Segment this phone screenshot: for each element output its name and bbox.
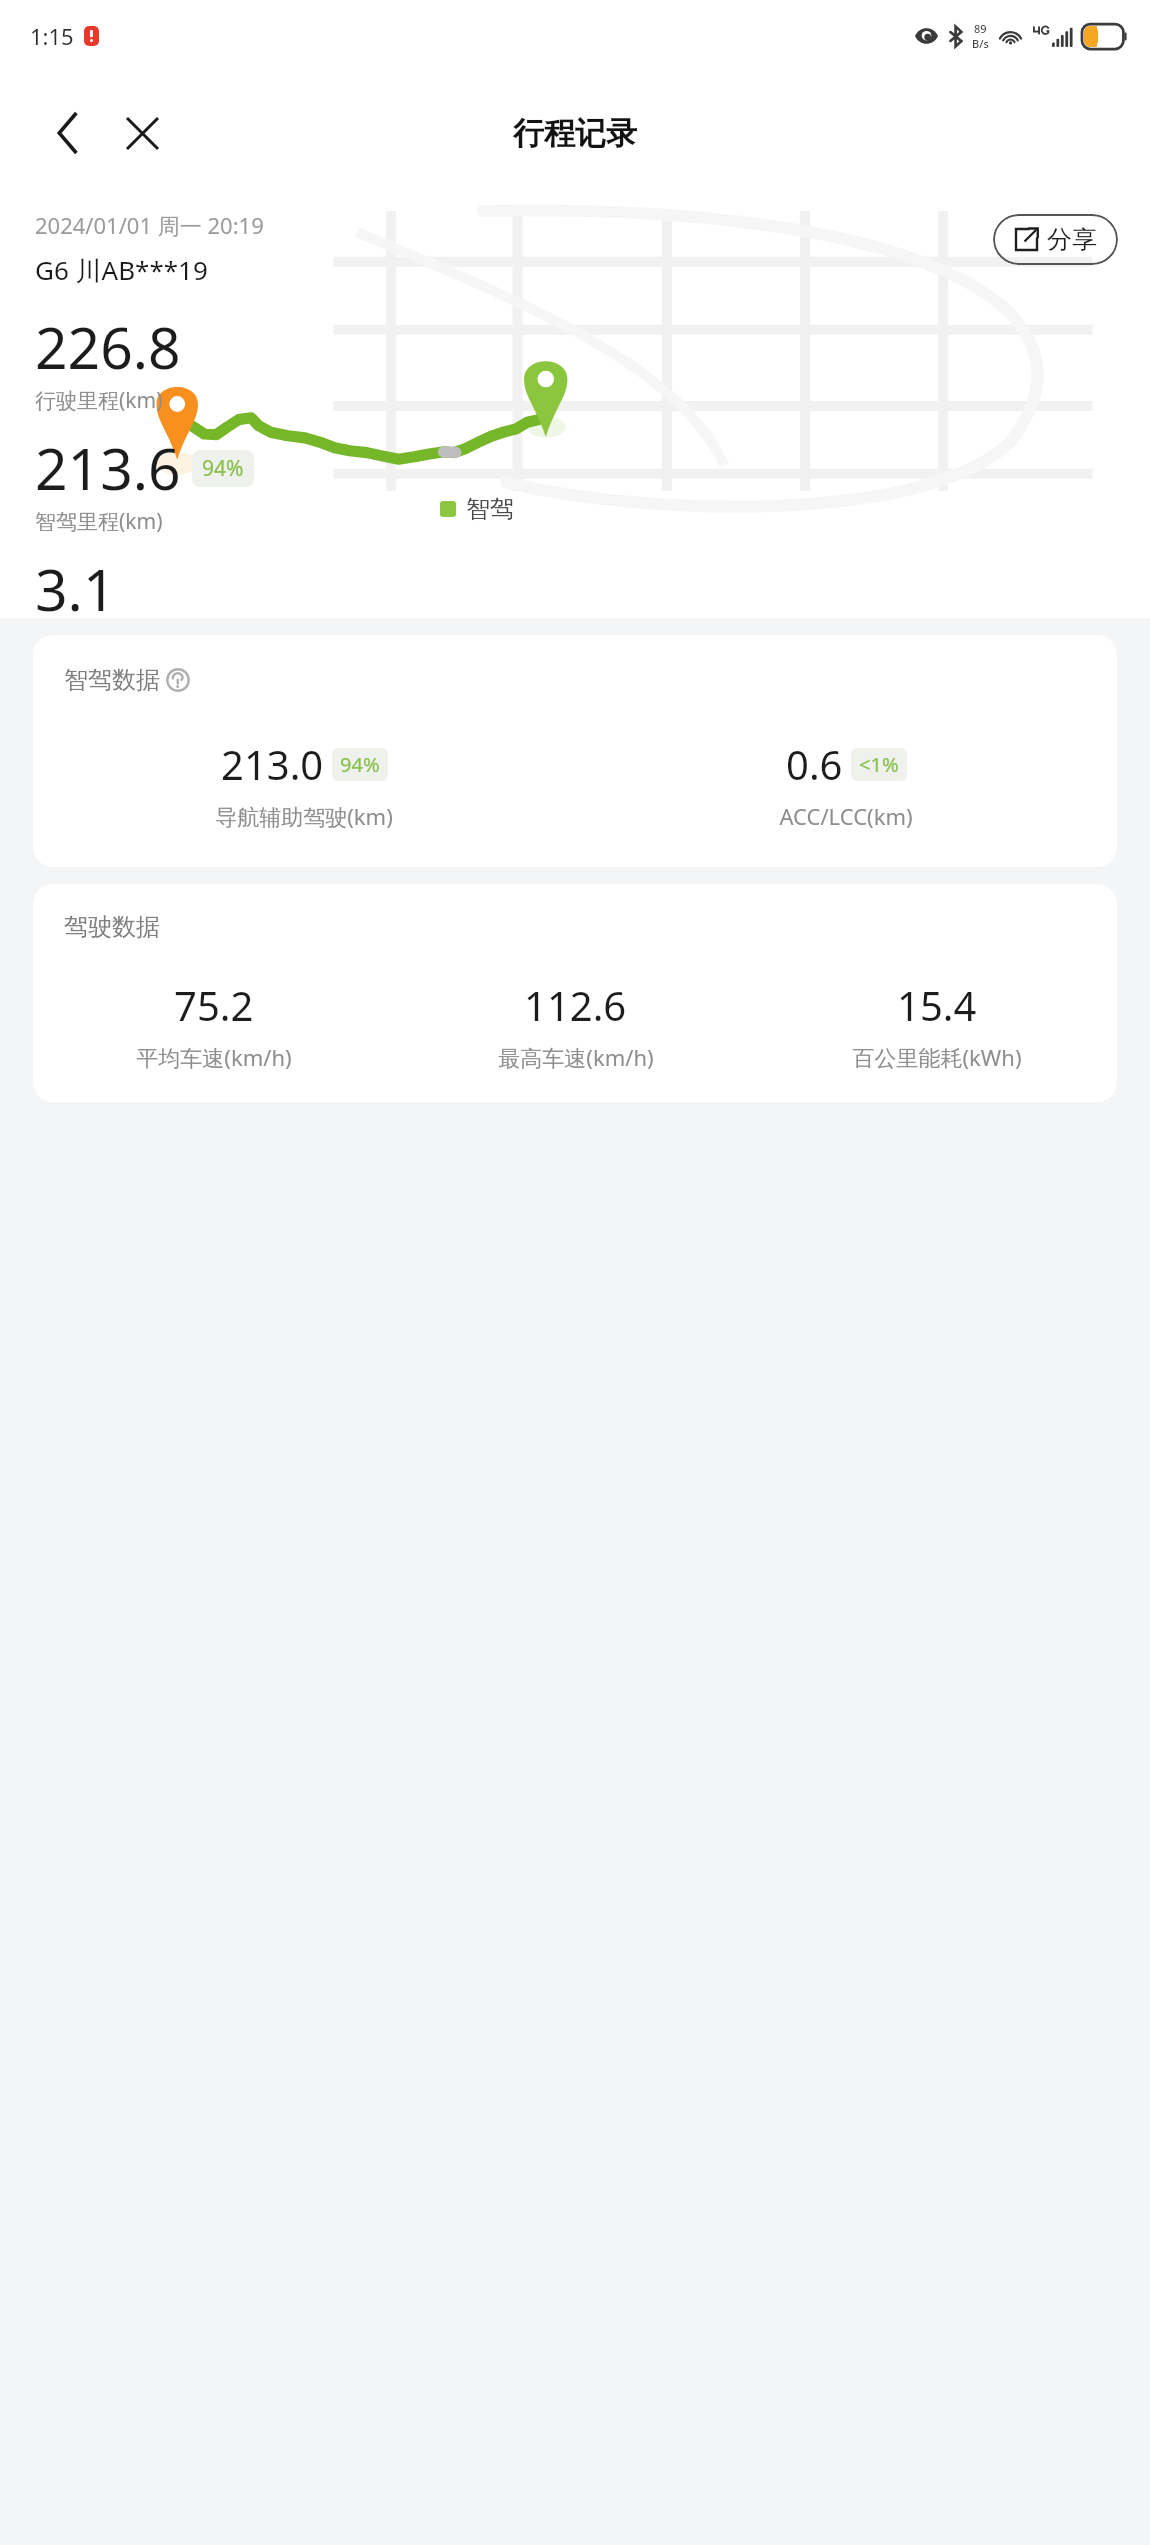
staticText: B/s — [972, 36, 989, 51]
staticText: 智驾数据 — [64, 665, 160, 695]
staticText: ACC/LCC(km) — [779, 801, 913, 831]
staticText: 94% — [340, 751, 380, 778]
staticText: 百公里能耗(kWh) — [852, 1042, 1022, 1072]
staticText: <1% — [859, 751, 899, 778]
staticText: 112.6 — [524, 978, 627, 1032]
button[interactable]: 分享 — [993, 214, 1118, 265]
button[interactable]: Close — [112, 103, 172, 163]
staticText: 0.6 — [786, 737, 843, 791]
staticText: 2024/01/01 周一 20:19 — [35, 210, 264, 240]
button[interactable]: 驾驶数据 — [33, 884, 1117, 1102]
staticText: 94% — [202, 454, 244, 483]
staticText: 89 — [974, 21, 987, 36]
staticText: 智驾 — [466, 494, 514, 524]
staticText: 驾驶数据 — [64, 912, 160, 942]
staticText: 最高车速(km/h) — [498, 1042, 654, 1072]
staticText: 15.4 — [897, 978, 977, 1032]
staticText: 226.8 — [35, 308, 181, 386]
staticText: 分享 — [1047, 224, 1097, 255]
button[interactable]: Back — [38, 103, 98, 163]
staticText: G6 川AB***19 — [35, 252, 208, 288]
staticText: 213.6 — [35, 429, 181, 507]
staticText: 213.0 — [221, 737, 324, 791]
staticText: 行程记录 — [513, 114, 637, 153]
staticText: 75.2 — [174, 978, 254, 1032]
staticText: 平均车速(km/h) — [136, 1042, 292, 1072]
button[interactable]: 智驾数据 — [33, 635, 1117, 867]
staticText: 智驾里程(km) — [35, 507, 163, 536]
staticText: 3.1 — [35, 550, 116, 618]
staticText: 行驶里程(km) — [35, 386, 163, 415]
staticText: 1:15 — [30, 21, 74, 51]
staticText: 导航辅助驾驶(km) — [215, 801, 393, 831]
